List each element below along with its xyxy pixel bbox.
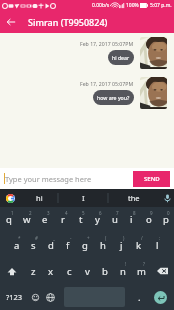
button[interactable]: 5 bbox=[72, 207, 89, 232]
button[interactable]: - bbox=[59, 232, 76, 258]
staticText: 0 bbox=[167, 210, 170, 216]
staticText: ( bbox=[105, 235, 107, 241]
button[interactable]: ( bbox=[94, 232, 112, 258]
button[interactable]: b bbox=[96, 258, 114, 284]
staticText: ! bbox=[125, 261, 127, 267]
button[interactable]: + bbox=[76, 232, 94, 258]
button[interactable]: * bbox=[8, 232, 25, 258]
staticText: f bbox=[66, 239, 70, 252]
staticText: w bbox=[23, 213, 31, 226]
staticText: x bbox=[48, 265, 54, 278]
button[interactable]: 8 bbox=[123, 207, 140, 232]
staticText: Feb 17, 2017 05:07PM bbox=[80, 80, 134, 87]
button[interactable]: Enter bbox=[147, 284, 174, 310]
staticText: t bbox=[79, 213, 83, 226]
staticText: 1 bbox=[11, 210, 14, 216]
staticText: 6 bbox=[99, 210, 102, 216]
staticText: - bbox=[70, 235, 72, 241]
button[interactable]: # bbox=[25, 232, 42, 258]
staticText: p bbox=[163, 213, 169, 226]
staticText: * bbox=[18, 235, 21, 241]
staticText: 3 bbox=[47, 210, 50, 216]
button[interactable]: . bbox=[131, 284, 147, 310]
staticText: h bbox=[100, 239, 106, 252]
button[interactable]: 1 bbox=[0, 207, 18, 232]
button[interactable]: Emoji bbox=[29, 284, 42, 310]
staticText: i bbox=[130, 213, 133, 226]
button[interactable]: 4 bbox=[54, 207, 72, 232]
button[interactable]: c bbox=[60, 258, 78, 284]
staticText: r bbox=[61, 213, 65, 226]
staticText: s bbox=[31, 239, 36, 252]
staticText: I bbox=[82, 193, 85, 203]
button[interactable]: v bbox=[78, 258, 96, 284]
button[interactable]: hi bbox=[21, 189, 58, 207]
staticText: _ bbox=[53, 235, 55, 241]
staticText: how are you? bbox=[97, 94, 130, 101]
button[interactable]: ! bbox=[114, 258, 132, 284]
staticText: 2 bbox=[29, 210, 32, 216]
staticText: 8 bbox=[133, 210, 136, 216]
button[interactable]: / bbox=[130, 232, 148, 258]
staticText: Type your message here bbox=[5, 174, 92, 184]
button[interactable]: ?123 bbox=[0, 284, 29, 310]
button[interactable]: Shift bbox=[0, 258, 24, 284]
button[interactable]: 0 bbox=[157, 207, 174, 232]
button[interactable]: 6 bbox=[89, 207, 106, 232]
staticText: 5 bbox=[82, 210, 85, 216]
button[interactable]: : bbox=[148, 232, 166, 258]
staticText: u bbox=[112, 213, 118, 226]
staticText: hi dear bbox=[112, 54, 130, 61]
button[interactable]: z bbox=[24, 258, 42, 284]
staticText: the bbox=[128, 193, 140, 203]
staticText: m bbox=[137, 265, 146, 278]
button[interactable]: SEND bbox=[133, 171, 170, 187]
staticText: Feb 17, 2017 05:07PM bbox=[80, 40, 134, 47]
staticText: 4 bbox=[65, 210, 68, 216]
button[interactable]: x bbox=[42, 258, 60, 284]
staticText: # bbox=[35, 235, 38, 241]
staticText: / bbox=[141, 235, 143, 241]
staticText: . bbox=[138, 291, 141, 304]
staticText: o bbox=[146, 213, 152, 226]
button[interactable]: Back bbox=[0, 11, 22, 33]
button[interactable]: Voice input bbox=[160, 189, 174, 207]
staticText: l bbox=[156, 239, 159, 252]
button[interactable]: Change language bbox=[42, 284, 58, 310]
staticText: Simran (T9950824) bbox=[28, 16, 108, 28]
staticText: g bbox=[82, 239, 88, 252]
button[interactable]: Backspace bbox=[150, 258, 174, 284]
staticText: n bbox=[120, 265, 126, 278]
button[interactable]: the bbox=[108, 189, 160, 207]
staticText: 100% bbox=[126, 2, 139, 9]
button[interactable]: hi dear bbox=[108, 50, 134, 65]
staticText: a bbox=[14, 239, 20, 252]
button[interactable]: ) bbox=[112, 232, 130, 258]
staticText: d bbox=[48, 239, 54, 252]
button[interactable]: _ bbox=[42, 232, 59, 258]
staticText: c bbox=[67, 265, 72, 278]
staticText: : bbox=[159, 235, 161, 241]
button[interactable]: ? bbox=[132, 258, 150, 284]
button[interactable]: how are you? bbox=[93, 90, 134, 105]
staticText: y bbox=[95, 213, 100, 226]
staticText: ? bbox=[143, 261, 145, 267]
button[interactable]: I bbox=[58, 189, 108, 207]
button[interactable]: 9 bbox=[140, 207, 157, 232]
staticText: q bbox=[6, 213, 12, 226]
staticText: SEND bbox=[144, 175, 160, 183]
staticText: e bbox=[42, 213, 48, 226]
staticText: ) bbox=[123, 235, 125, 241]
staticText: v bbox=[85, 265, 90, 278]
staticText: 0.00b/s bbox=[92, 2, 110, 9]
staticText: ?123 bbox=[6, 292, 23, 302]
button[interactable]: 2 bbox=[18, 207, 36, 232]
staticText: z bbox=[31, 265, 36, 278]
button[interactable]: 3 bbox=[36, 207, 54, 232]
button[interactable]: 7 bbox=[106, 207, 123, 232]
staticText: j bbox=[120, 239, 123, 252]
staticText: 5:07 p.m. bbox=[150, 2, 172, 9]
staticText: 7 bbox=[116, 210, 119, 216]
staticText: + bbox=[87, 235, 90, 241]
